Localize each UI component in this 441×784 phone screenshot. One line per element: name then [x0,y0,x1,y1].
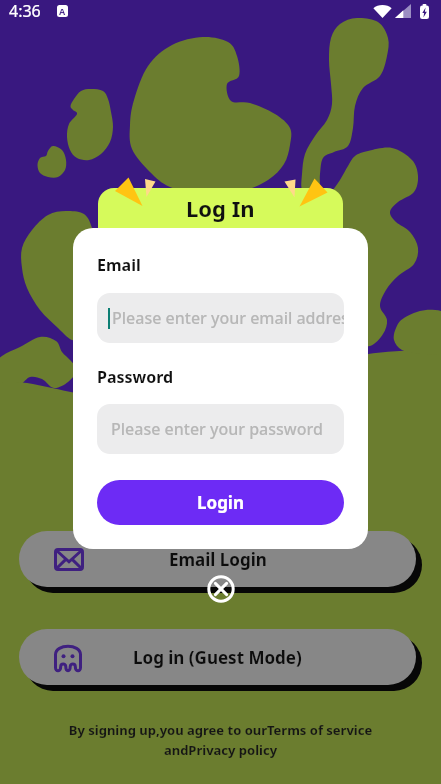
staticText: By signing up,you agree to ourTerms of s… [63,721,378,759]
staticText: A [59,5,66,17]
button[interactable]: Please enter your email address [97,293,344,343]
staticText: Please enter your password [111,418,323,440]
button[interactable]: Email [19,531,416,587]
button[interactable]: Guest [19,629,416,685]
other: Guest [54,643,82,672]
staticText: Login [197,491,245,514]
button[interactable]: Close [207,575,235,603]
staticText: 4:36 [9,0,41,22]
staticText: Email [97,254,141,276]
staticText: Email Login [169,548,267,571]
staticText: Please enter your email address [112,307,344,329]
staticText: Password [97,366,174,388]
staticText: Log in (Guest Mode) [133,646,302,669]
staticText: Log In [186,193,255,223]
other: Email [54,548,84,571]
button[interactable]: Please enter your password [97,404,344,454]
button[interactable]: Login [97,480,344,525]
